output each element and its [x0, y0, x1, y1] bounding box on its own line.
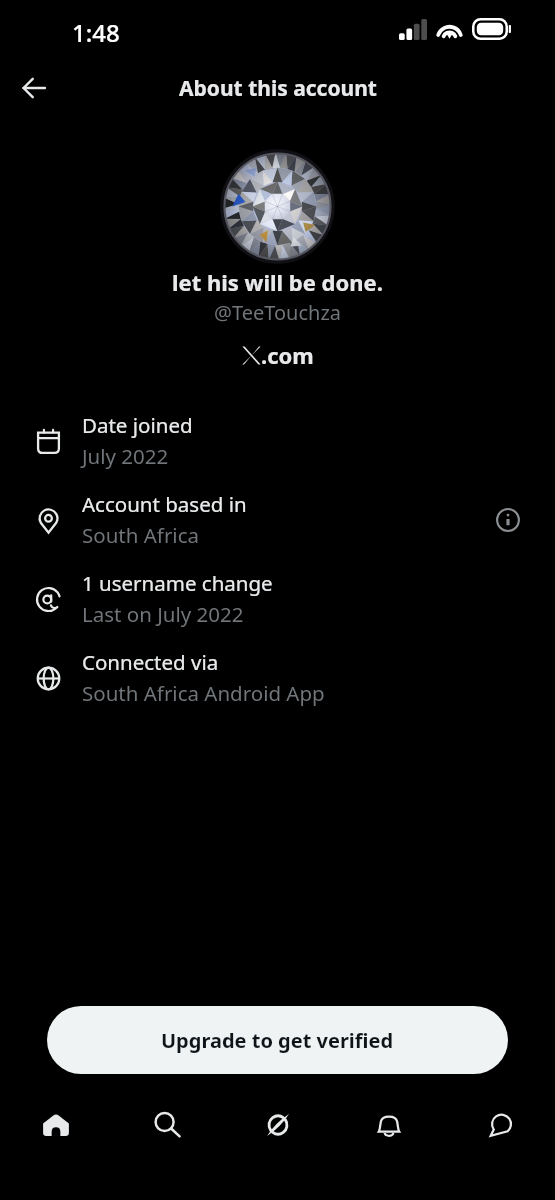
button[interactable]: Connected via [0, 637, 555, 716]
button[interactable]: Notifications [361, 1097, 417, 1153]
staticText: Date joined [82, 411, 193, 439]
button[interactable]: Upgrade to get verified [47, 1006, 508, 1074]
staticText: South Africa Android App [82, 679, 325, 707]
button[interactable]: Account based in [0, 479, 555, 558]
button[interactable]: Back [10, 64, 58, 112]
button[interactable]: Home [28, 1097, 84, 1153]
button[interactable]: Date joined [0, 400, 555, 479]
button[interactable]: Messages [472, 1097, 528, 1153]
staticText: Last on July 2022 [82, 600, 244, 628]
button[interactable]: More info [489, 501, 527, 539]
button[interactable]: 1 username change [0, 558, 555, 637]
staticText: 1 username change [82, 569, 273, 597]
staticText: 1:48 [72, 16, 120, 49]
button[interactable]: Grok [250, 1097, 306, 1153]
staticText: @TeeTouchza [214, 299, 342, 326]
staticText: About this account [179, 74, 377, 103]
staticText: Account based in [82, 490, 247, 518]
staticText: let his will be done. [172, 267, 383, 297]
staticText: July 2022 [82, 442, 169, 470]
button[interactable]: Search [139, 1097, 195, 1153]
staticText: South Africa [82, 521, 199, 549]
staticText: Upgrade to get verified [161, 1027, 394, 1054]
staticText: .com [261, 340, 314, 370]
staticText: Connected via [82, 648, 219, 676]
